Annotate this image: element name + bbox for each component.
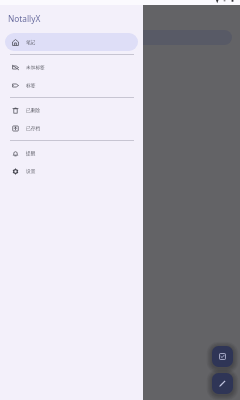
button[interactable]: 标签 bbox=[5, 76, 138, 94]
button[interactable]: 提醒 bbox=[5, 144, 138, 162]
button[interactable]: New list bbox=[212, 346, 233, 367]
staticText: 已存档 bbox=[26, 125, 41, 131]
button[interactable]: 已删除 bbox=[5, 101, 138, 119]
button[interactable]: 设置 bbox=[5, 162, 138, 180]
button[interactable]: Search bbox=[8, 30, 232, 45]
button[interactable]: 未加标签 bbox=[5, 58, 138, 76]
staticText: 标签 bbox=[26, 82, 36, 88]
staticText: 笔记 bbox=[26, 39, 36, 45]
staticText: 已删除 bbox=[26, 107, 41, 113]
button[interactable]: 已存档 bbox=[5, 119, 138, 137]
staticText: 提醒 bbox=[26, 150, 36, 156]
button[interactable]: 笔记 bbox=[5, 33, 138, 51]
staticText: NotallyX bbox=[8, 13, 41, 24]
staticText: 未加标签 bbox=[26, 64, 45, 70]
button[interactable]: New note bbox=[212, 373, 233, 394]
staticText: 设置 bbox=[26, 168, 36, 174]
